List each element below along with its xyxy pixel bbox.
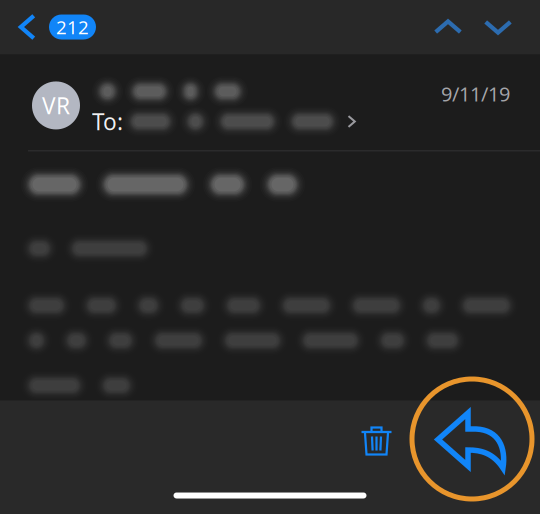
button[interactable]: Previous message — [423, 1, 473, 53]
button[interactable]: Reply — [421, 399, 522, 482]
button[interactable]: Back to inbox, 212 messages — [0, 3, 96, 51]
staticText: VR — [42, 90, 70, 120]
button[interactable]: Delete — [340, 411, 413, 469]
staticText: 212 — [56, 15, 89, 39]
button[interactable]: Next message — [473, 1, 523, 53]
staticText: 9/11/19 — [441, 80, 510, 107]
button[interactable]: Message header, from sender, 9/11/19 — [0, 54, 540, 150]
staticText: To: — [92, 106, 123, 136]
